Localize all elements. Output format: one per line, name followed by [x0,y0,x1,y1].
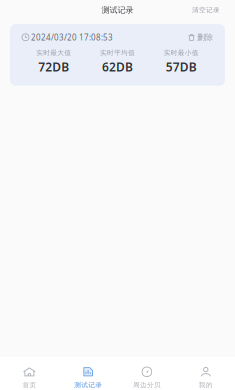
button[interactable]: 周边分贝 [117,357,176,390]
staticText: 测试记录 [74,381,102,389]
staticText: 首页 [22,381,36,389]
staticText: 实时最大值 [36,49,71,57]
button[interactable]: 测试记录 [59,357,118,390]
button[interactable]: 清空记录 [182,1,235,19]
staticText: 实时最小值 [164,49,199,57]
button[interactable]: 首页 [0,357,59,390]
staticText: 清空记录 [192,6,220,14]
staticText: 周边分贝 [133,381,161,389]
staticText: 测试记录 [101,5,133,15]
button[interactable]: 删除 [188,32,213,42]
button[interactable]: 我的 [176,357,235,390]
staticText: 57DB [166,59,197,75]
staticText: 2024/03/20 17:08:53 [29,32,113,43]
staticText: 我的 [199,381,213,389]
staticText: 72DB [38,59,69,75]
staticText: 62DB [102,59,133,75]
staticText: 删除 [197,32,213,42]
staticText: 实时平均值 [100,49,135,57]
